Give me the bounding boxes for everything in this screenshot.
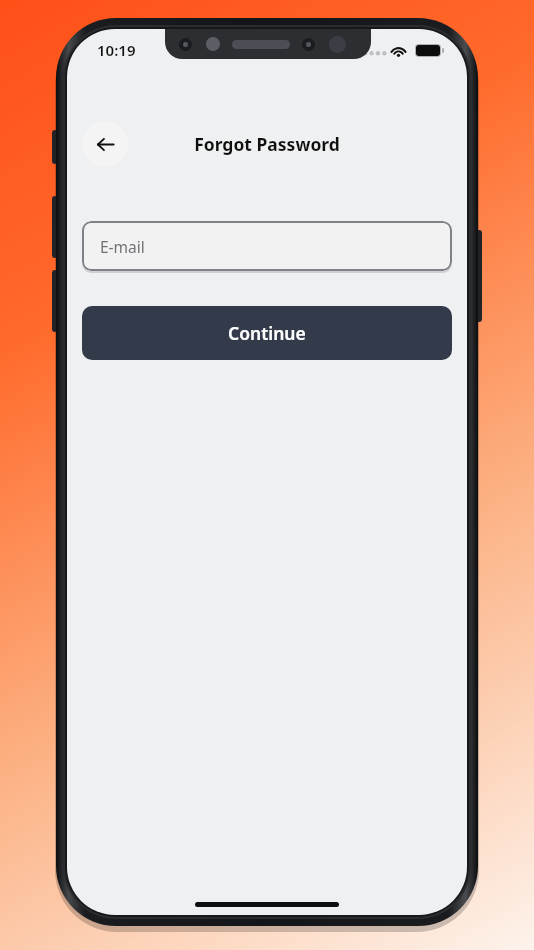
button[interactable]: Back [82, 121, 128, 167]
staticText: 10:19 [97, 40, 136, 60]
button[interactable]: E-mail [82, 221, 452, 271]
staticText: E-mail [100, 236, 145, 257]
staticText: Forgot Password [194, 132, 340, 156]
button[interactable]: Continue [82, 306, 452, 360]
staticText: Continue [228, 321, 306, 345]
